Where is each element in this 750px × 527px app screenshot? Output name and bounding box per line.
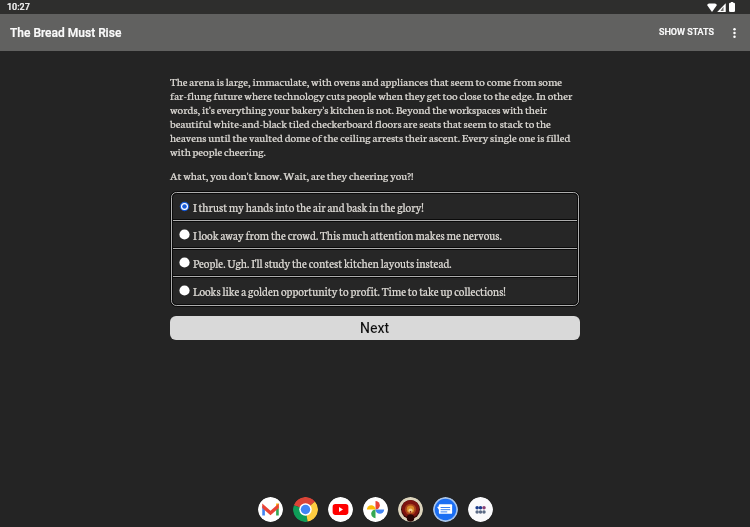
staticText: I thrust my hands into the air and bask … xyxy=(193,199,424,215)
staticText: SHOW STATS xyxy=(659,27,714,38)
button[interactable]: Next xyxy=(170,316,580,340)
button[interactable]: I look away from the crowd. This much at… xyxy=(170,222,580,247)
staticText: Next xyxy=(360,320,390,336)
button[interactable]: All apps xyxy=(468,497,493,522)
button[interactable]: YouTube xyxy=(328,497,353,522)
staticText: People. Ugh. I'll study the contest kitc… xyxy=(193,255,452,271)
button[interactable]: Gmail xyxy=(258,497,283,522)
button[interactable]: Chrome xyxy=(293,497,318,522)
button[interactable]: More options xyxy=(722,21,746,45)
staticText: Looks like a golden opportunity to profi… xyxy=(193,283,506,299)
button[interactable]: Messages xyxy=(433,497,458,522)
staticText: The arena is large, immaculate, with ove… xyxy=(170,73,580,158)
staticText: At what, you don't know. Wait, are they … xyxy=(170,167,414,182)
button[interactable]: SHOW STATS xyxy=(651,18,722,47)
staticText: 10:27 xyxy=(7,2,30,13)
staticText: The Bread Must Rise xyxy=(10,26,122,40)
button[interactable]: People. Ugh. I'll study the contest kitc… xyxy=(170,250,580,275)
button[interactable]: I thrust my hands into the air and bask … xyxy=(170,194,580,219)
button[interactable]: Photos xyxy=(363,497,388,522)
staticText: I look away from the crowd. This much at… xyxy=(193,227,502,243)
button[interactable]: Looks like a golden opportunity to profi… xyxy=(170,278,580,303)
button[interactable]: Game xyxy=(398,497,423,522)
